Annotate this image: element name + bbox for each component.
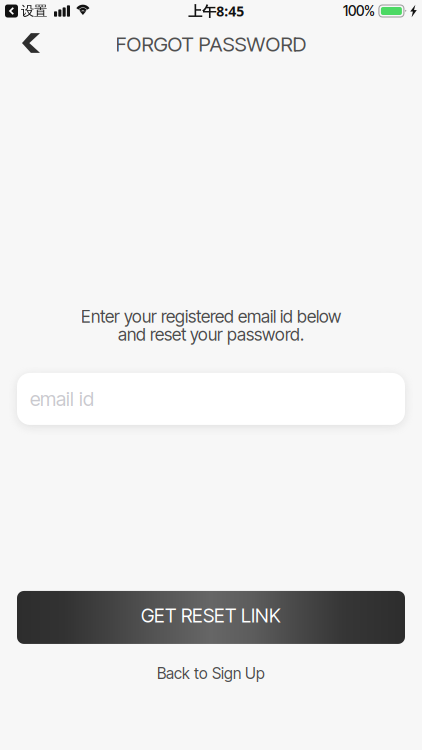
staticText: 设置 <box>21 3 47 19</box>
staticText: FORGOT PASSWORD <box>115 32 306 56</box>
staticText: GET RESET LINK <box>141 604 281 627</box>
button[interactable]: GET RESET LINK <box>0 591 422 644</box>
staticText: Enter your registered email id below <box>81 306 341 327</box>
staticText: and reset your password. <box>118 324 304 345</box>
staticText: 100% <box>343 2 375 19</box>
button[interactable]: Back <box>0 22 54 66</box>
staticText: email id <box>30 387 94 411</box>
staticText: 上午8:45 <box>188 1 244 21</box>
staticText: Back to Sign Up <box>157 664 265 683</box>
button[interactable]: Back to Sign Up <box>157 644 265 695</box>
